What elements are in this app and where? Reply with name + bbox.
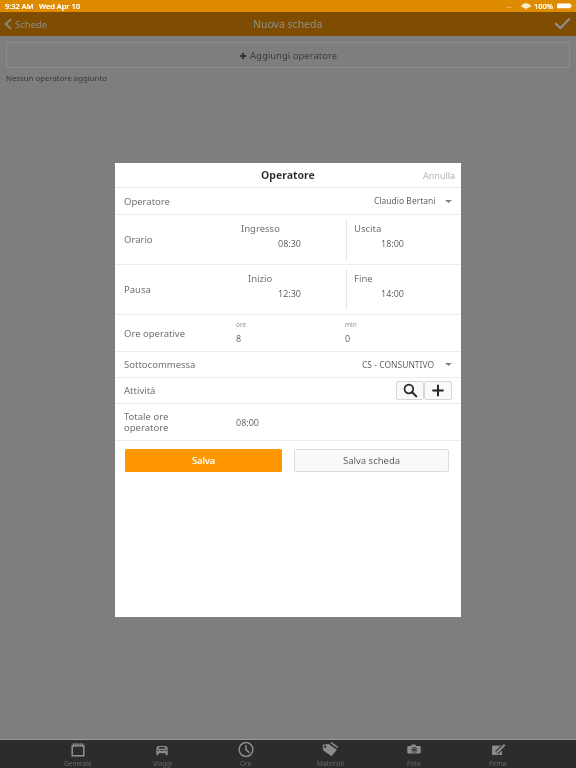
staticText: 8 xyxy=(236,332,242,344)
staticText: Attività xyxy=(124,384,156,397)
staticText: Wed Apr 10 xyxy=(39,1,81,11)
staticText: Aggiungi operatore xyxy=(250,49,337,62)
button[interactable]: Foto xyxy=(372,740,456,768)
button[interactable]: Salva scheda xyxy=(294,449,449,472)
button[interactable]: Firma xyxy=(456,740,540,768)
staticText: 100% xyxy=(534,1,554,11)
staticText: Sottocommessa xyxy=(124,358,196,371)
button[interactable]: Schede xyxy=(0,12,54,36)
staticText: Viaggi xyxy=(153,759,172,768)
staticText: 12:30 xyxy=(278,287,302,299)
button[interactable]: Annulla xyxy=(423,163,461,187)
staticText: Annulla xyxy=(423,169,456,181)
button[interactable]: Materiali xyxy=(288,740,372,768)
staticText: Salva scheda xyxy=(343,454,401,467)
staticText: min xyxy=(345,320,357,329)
staticText: Foto xyxy=(407,759,421,768)
staticText: 14:00 xyxy=(381,287,405,299)
staticText: Salva xyxy=(192,454,216,467)
staticText: Schede xyxy=(15,18,48,31)
staticText: Operatore xyxy=(261,168,315,182)
button[interactable]: Generale xyxy=(36,740,120,768)
staticText: 18:00 xyxy=(381,237,405,249)
staticText: Firma xyxy=(489,759,507,768)
staticText: 9:32 AM xyxy=(5,1,34,11)
button[interactable]: Salva xyxy=(125,449,282,472)
staticText: CS - CONSUNTIVO xyxy=(362,359,435,371)
staticText: Nessun operatore aggiunto xyxy=(6,73,107,84)
staticText: Claudio Bertani xyxy=(374,195,436,207)
button[interactable]: Aggiungi operatore xyxy=(6,42,570,68)
staticText: Ingresso xyxy=(241,222,280,235)
staticText: Materiali xyxy=(317,759,344,768)
staticText: Orario xyxy=(124,233,153,246)
staticText: Totale ore xyxy=(124,410,169,423)
button[interactable]: Ore xyxy=(204,740,288,768)
staticText: 08:00 xyxy=(236,416,260,428)
staticText: operatore xyxy=(124,421,169,434)
staticText: Ore xyxy=(240,759,252,768)
button[interactable]: Cerca xyxy=(396,381,424,400)
button[interactable]: Viaggi xyxy=(120,740,204,768)
staticText: Nuova scheda xyxy=(253,17,323,31)
button[interactable]: Sottocommessa xyxy=(115,352,461,377)
staticText: Generale xyxy=(64,759,92,768)
staticText: Pausa xyxy=(124,283,151,296)
button[interactable]: Aggiungi xyxy=(424,381,452,400)
button[interactable]: Conferma xyxy=(548,12,576,36)
staticText: 08:30 xyxy=(278,237,302,249)
button[interactable]: Operatore xyxy=(115,188,461,214)
staticText: Uscita xyxy=(354,222,382,235)
staticText: Ore operative xyxy=(124,327,186,340)
staticText: 0 xyxy=(345,332,351,344)
staticText: Operatore xyxy=(124,195,170,208)
staticText: Fine xyxy=(354,272,373,285)
staticText: Inizio xyxy=(248,272,273,285)
staticText: ore xyxy=(236,320,247,329)
